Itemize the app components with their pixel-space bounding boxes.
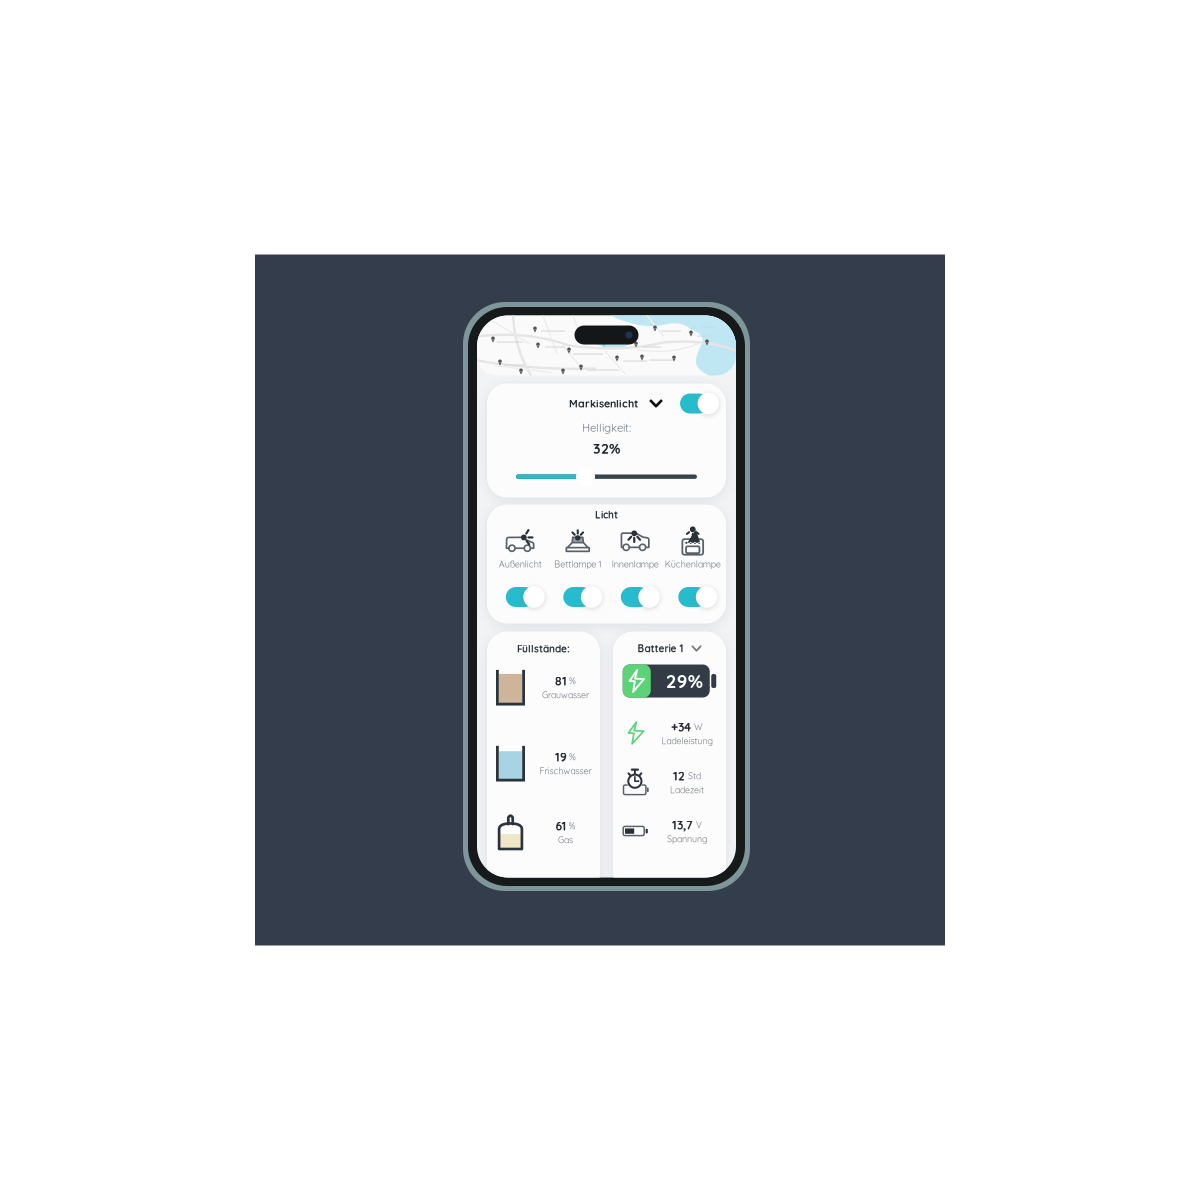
staticText: Grauwasser [542,689,589,700]
button[interactable]: Licht 2 an/aus [549,586,606,608]
staticText: Frischwasser [539,765,591,776]
staticText: % [568,820,575,831]
staticText: % [569,675,576,686]
staticText: Ladezeit [670,784,704,795]
staticText: 29% [666,669,703,693]
button[interactable]: Innenlampe [606,524,664,571]
staticText: Helligkeit: [582,420,631,435]
staticText: 13,7 [672,817,693,832]
staticText: 81 [555,673,567,688]
button[interactable]: Licht 1 an/aus [491,586,549,608]
button[interactable]: Leuchte wechseln [647,394,665,412]
staticText: Std [688,770,701,781]
button[interactable]: Batterie wechseln [637,641,701,655]
staticText: W [694,721,703,732]
staticText: 19 [555,749,567,764]
staticText: Gas [558,834,573,845]
staticText: 32% [593,440,620,457]
staticText: 12 [673,768,685,783]
button[interactable]: Außenlicht [491,524,549,571]
staticText: Küchenlampe [665,558,721,570]
staticText: Licht [595,508,618,521]
button[interactable]: Licht 3 an/aus [606,586,664,608]
button[interactable]: Markisenlicht an/aus [675,393,714,414]
staticText: Bettlampe 1 [554,558,601,570]
button[interactable]: Licht 4 an/aus [664,586,721,608]
staticText: Batterie 1 [637,642,683,655]
button[interactable]: Bettlampe 1 [549,524,606,571]
staticText: +34 [671,719,691,734]
staticText: % [569,751,576,762]
button[interactable]: Küchenlampe [664,524,721,571]
staticText: Außenlicht [499,558,542,570]
staticText: 61 [555,818,566,833]
staticText: Markisenlicht [569,397,638,410]
staticText: Spannung [667,833,707,844]
staticText: V [696,819,702,830]
staticText: Innenlampe [612,558,659,570]
staticText: Ladeleistung [661,735,712,746]
staticText: Füllstände: [517,642,570,655]
